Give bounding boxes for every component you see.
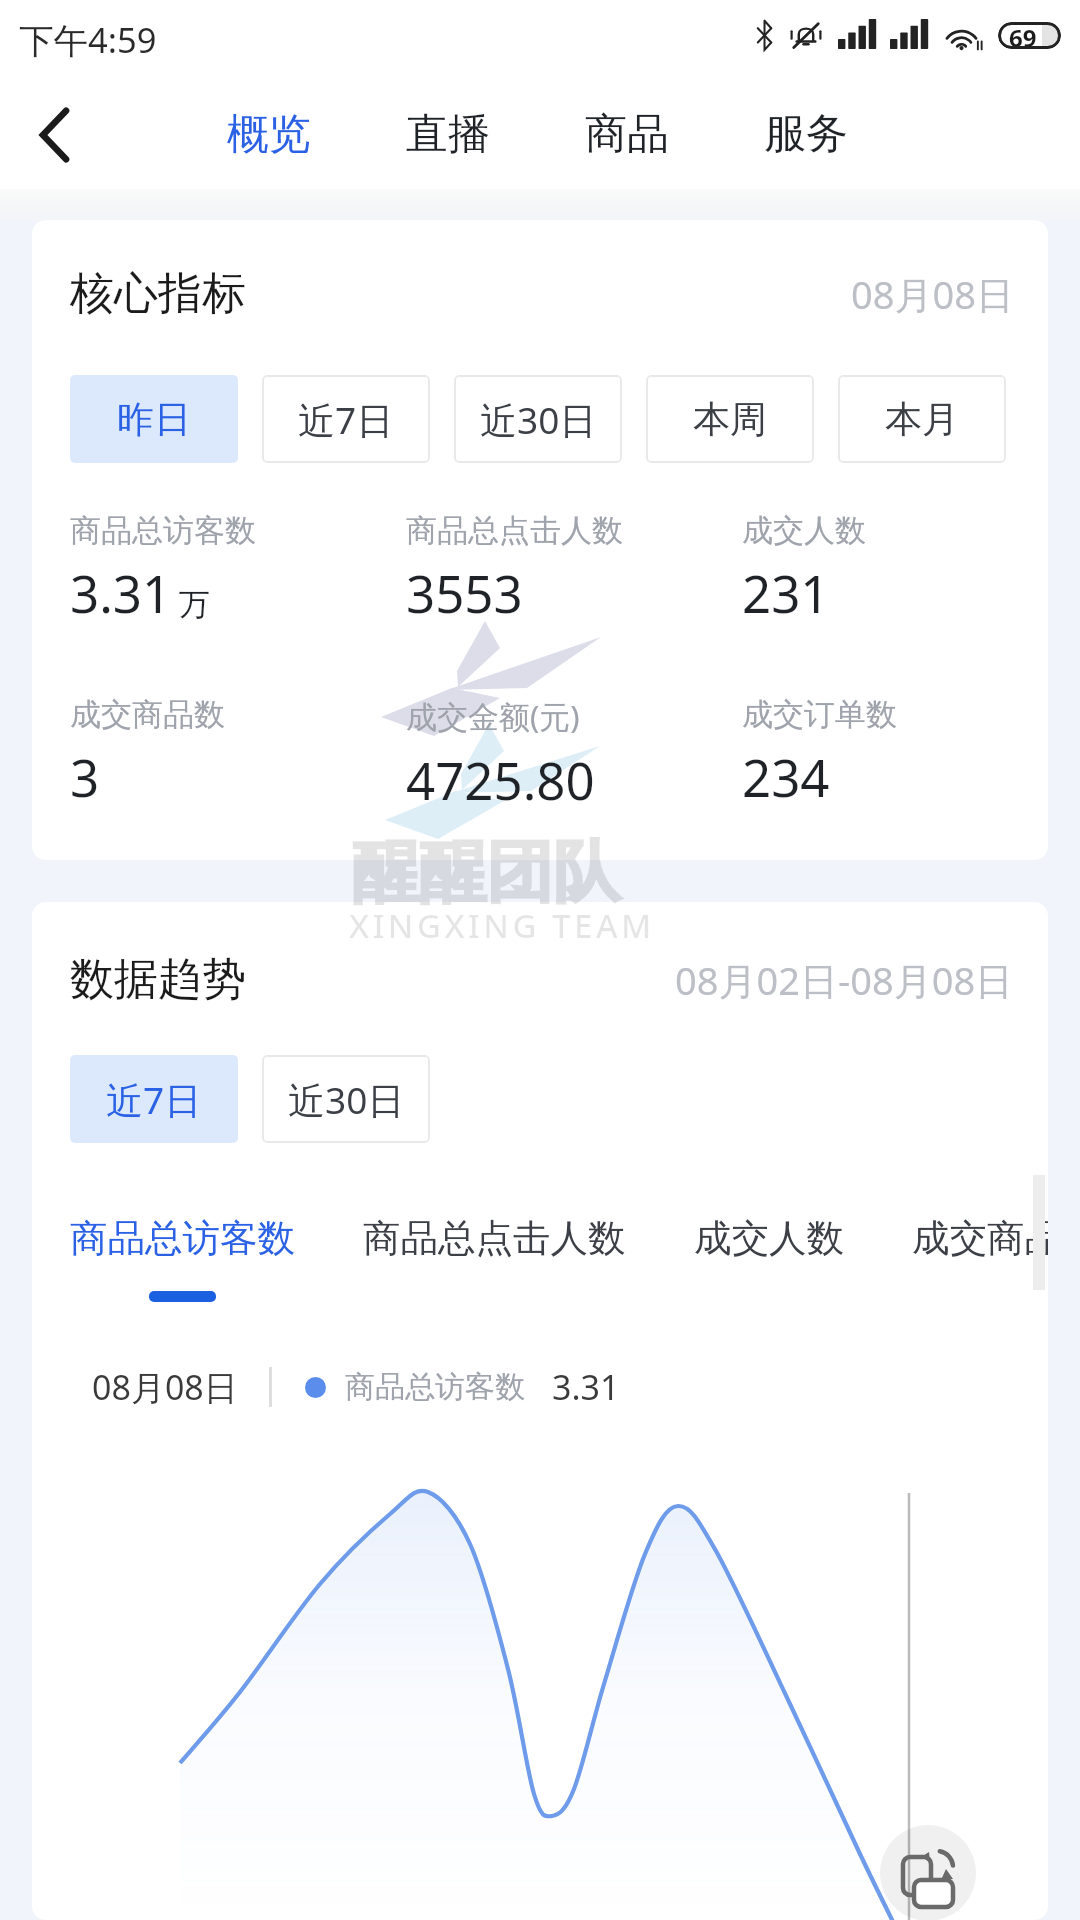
staticText: 成交订单数 (742, 695, 897, 734)
staticText: 近30日 (288, 1074, 405, 1125)
staticText: 近30日 (480, 394, 597, 445)
staticText: 08月08日 (851, 268, 1014, 320)
staticText: 商品总点击人数 (406, 511, 623, 550)
staticText: 4725.80 (406, 745, 595, 814)
button[interactable]: 近7日 (70, 1055, 238, 1143)
staticText: 3.31 (70, 558, 172, 627)
staticText: 商品总访客数 (345, 1368, 525, 1406)
staticText: 234 (742, 742, 830, 811)
staticText: 近7日 (106, 1074, 202, 1125)
staticText: 成交商品数 (70, 695, 225, 734)
staticText: 昨日 (117, 396, 191, 443)
button[interactable]: 成交人数 (694, 1213, 844, 1291)
staticText: 商品总点击人数 (363, 1215, 626, 1262)
staticText: 数据趋势 (70, 952, 246, 1007)
staticText: 231 (742, 558, 830, 627)
button[interactable]: 商品总点击人数 (363, 1213, 626, 1291)
staticText: 下午4:59 (19, 16, 157, 63)
staticText: 万 (179, 585, 210, 624)
staticText: 08月08日 (92, 1364, 238, 1410)
staticText: XINGXING TEAM (349, 903, 655, 948)
button[interactable]: 商品总访客数 (70, 1213, 295, 1302)
staticText: 醒醒团队 (352, 830, 620, 914)
staticText: 商品总访客数 (70, 1215, 295, 1262)
staticText: 概览 (227, 108, 311, 161)
button[interactable]: Rotate screen (880, 1825, 976, 1920)
staticText: 服务 (764, 108, 848, 161)
button[interactable]: 本周 (646, 375, 814, 463)
staticText: 商品总访客数 (70, 511, 256, 550)
button[interactable]: Back (12, 78, 100, 189)
button[interactable]: 本月 (838, 375, 1006, 463)
button[interactable]: 直播 (359, 78, 537, 189)
staticText: 成交人数 (742, 511, 866, 550)
button[interactable]: 成交商品 (912, 1213, 1048, 1291)
staticText: 本月 (885, 396, 959, 443)
staticText: 近7日 (298, 394, 394, 445)
button[interactable]: 概览 (180, 78, 358, 189)
button[interactable]: 近7日 (262, 375, 430, 463)
staticText: 成交商品 (912, 1215, 1048, 1262)
staticText: 08月02日-08月08日 (675, 954, 1014, 1006)
staticText: 核心指标 (70, 266, 246, 321)
button[interactable]: 服务 (717, 78, 895, 189)
staticText: 商品 (585, 108, 669, 161)
staticText: 本周 (693, 396, 767, 443)
staticText: 成交金额(元) (406, 695, 580, 737)
staticText: 3553 (406, 558, 523, 627)
button[interactable]: 昨日 (70, 375, 238, 463)
staticText: 3.31 (552, 1364, 620, 1410)
staticText: 成交人数 (694, 1215, 844, 1262)
button[interactable]: 近30日 (454, 375, 622, 463)
button[interactable]: 商品 (538, 78, 716, 189)
staticText: 3 (70, 742, 100, 811)
staticText: 直播 (406, 108, 490, 161)
staticText: 69 (1009, 22, 1037, 48)
button[interactable]: 近30日 (262, 1055, 430, 1143)
